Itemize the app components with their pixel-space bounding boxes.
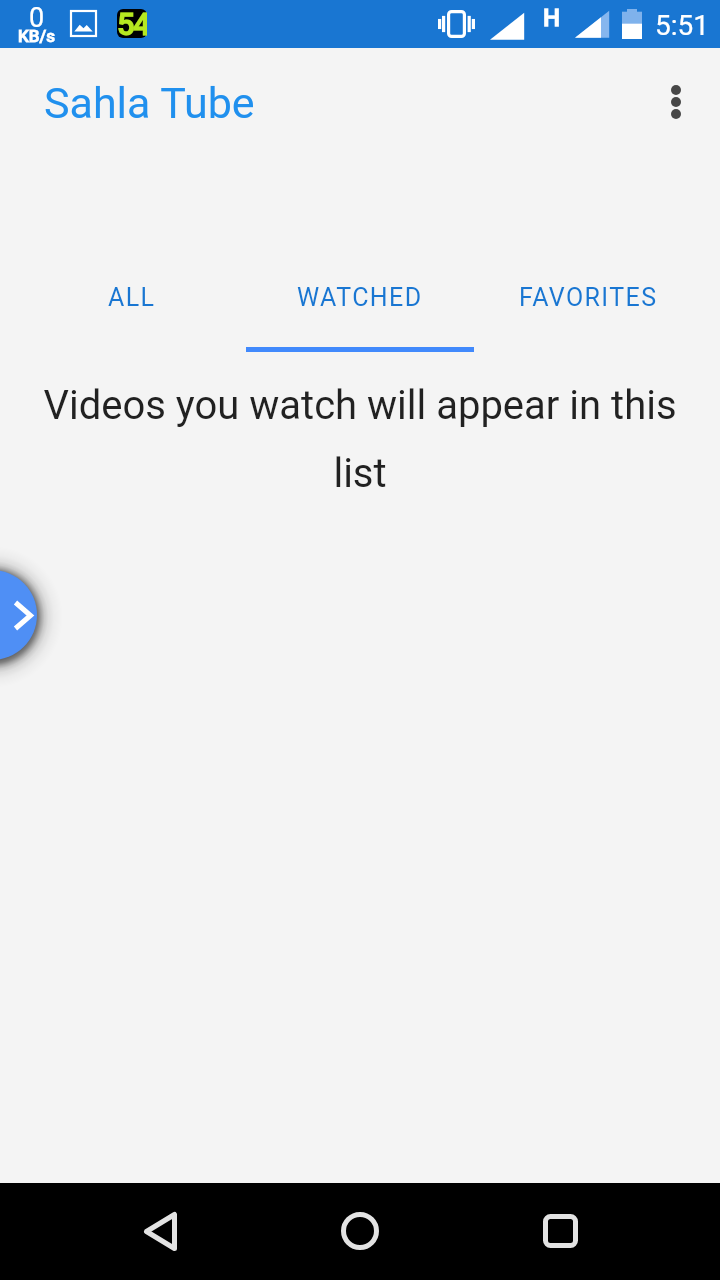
button[interactable]: Next: [0, 570, 37, 660]
staticText: KB/s: [18, 26, 55, 46]
button[interactable]: Back: [112, 1183, 208, 1279]
staticText: WATCHED: [297, 283, 423, 312]
staticText: H: [543, 4, 561, 32]
button[interactable]: Recents: [512, 1183, 608, 1279]
staticText: Videos you watch will appear in this lis…: [20, 382, 700, 497]
staticText: ALL: [108, 283, 156, 312]
button[interactable]: FAVORITES: [474, 273, 702, 355]
staticText: FAVORITES: [519, 283, 658, 312]
button[interactable]: ALL: [18, 273, 246, 355]
button[interactable]: Home: [312, 1183, 408, 1279]
button[interactable]: More options: [627, 53, 720, 149]
button[interactable]: WATCHED: [246, 273, 474, 355]
staticText: 5:51: [655, 9, 709, 42]
staticText: 54: [117, 6, 147, 42]
staticText: 0: [29, 2, 45, 34]
staticText: Sahla Tube: [44, 78, 255, 128]
